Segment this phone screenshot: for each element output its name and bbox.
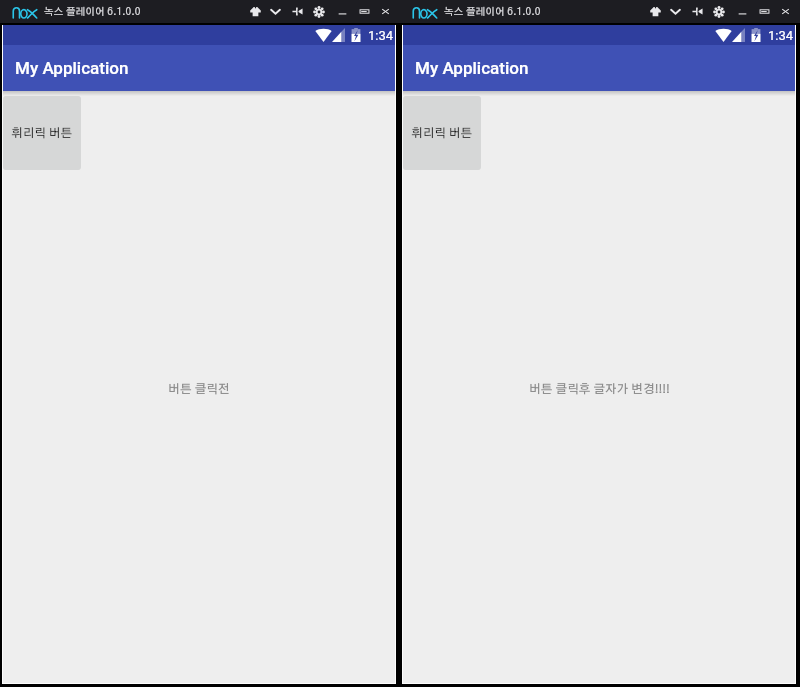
button[interactable]: Pin on top [686, 0, 708, 23]
button[interactable]: Minimize [331, 0, 353, 23]
staticText: 버튼 클릭후 글자가 변경!!!! [529, 383, 670, 395]
staticText: 녹스 플레이어 6.1.0.0 [44, 7, 141, 17]
button[interactable]: Settings [708, 0, 730, 23]
staticText: 휘리릭 버튼 [411, 127, 473, 139]
staticText: 1:34 [768, 28, 794, 43]
staticText: My Application [415, 58, 529, 78]
button[interactable]: Settings [308, 0, 330, 23]
button[interactable]: Show menu [264, 0, 286, 23]
staticText: 녹스 플레이어 6.1.0.0 [444, 7, 541, 17]
staticText: My Application [15, 58, 129, 78]
staticText: 휘리릭 버튼 [11, 127, 73, 139]
button[interactable]: Show menu [664, 0, 686, 23]
button[interactable]: 휘리릭 버튼 [403, 96, 481, 170]
staticText: 1:34 [368, 28, 394, 43]
staticText: 버튼 클릭전 [168, 383, 230, 395]
button[interactable]: Close [774, 0, 796, 23]
button[interactable]: Skin [644, 0, 666, 23]
button[interactable]: Skin [244, 0, 266, 23]
button[interactable]: Minimize [731, 0, 753, 23]
button[interactable]: Pin on top [286, 0, 308, 23]
button[interactable]: Maximize [353, 0, 375, 23]
button[interactable]: Close [374, 0, 396, 23]
button[interactable]: 휘리릭 버튼 [3, 96, 81, 170]
button[interactable]: Maximize [753, 0, 775, 23]
